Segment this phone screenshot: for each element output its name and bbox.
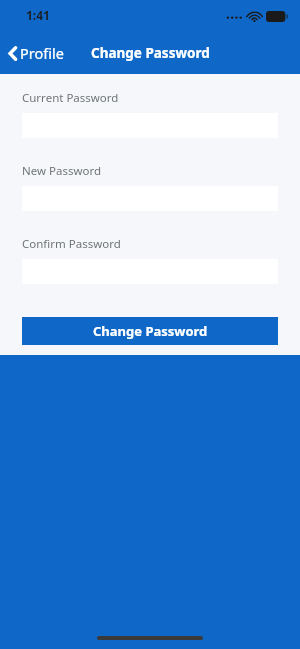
- button[interactable]: Profile: [0, 39, 72, 67]
- staticText: Profile: [20, 43, 64, 63]
- staticText: Current Password: [22, 90, 119, 106]
- staticText: New Password: [22, 163, 102, 179]
- staticText: 1:41: [26, 7, 50, 23]
- staticText: Confirm Password: [22, 236, 121, 252]
- staticText: Change Password: [93, 322, 208, 340]
- staticText: Change Password: [91, 44, 210, 62]
- button[interactable]: Change Password: [22, 317, 278, 345]
